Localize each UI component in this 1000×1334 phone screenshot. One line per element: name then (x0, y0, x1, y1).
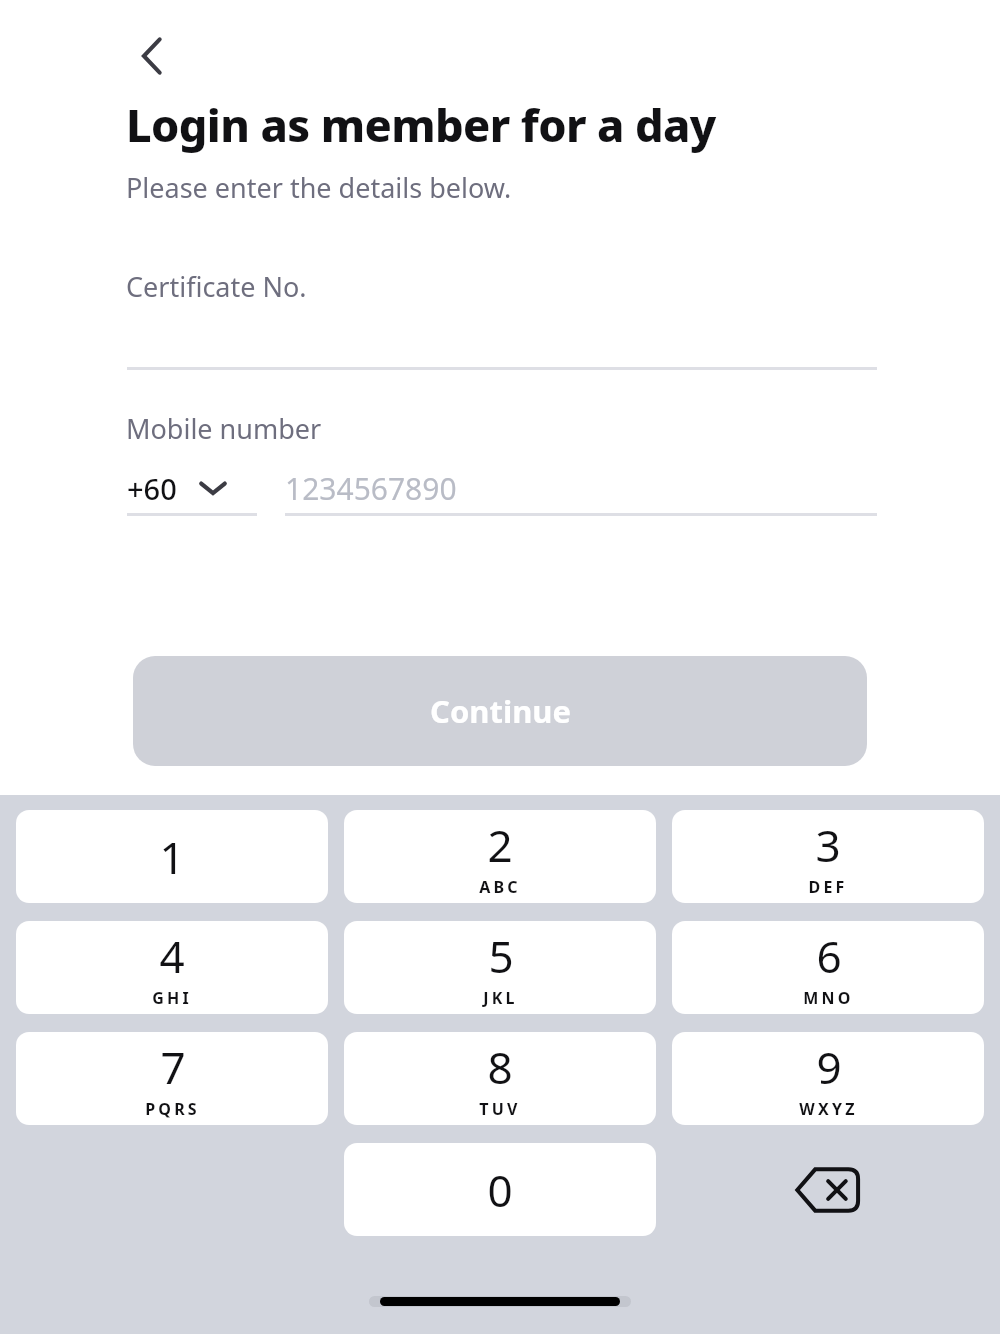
staticText: TUV (479, 1098, 521, 1120)
staticText: MNO (803, 987, 854, 1009)
staticText: WXYZ (799, 1098, 858, 1120)
staticText: +60 (127, 469, 177, 508)
staticText: 6 (816, 926, 842, 986)
button[interactable]: +60 (127, 463, 257, 516)
button[interactable]: Backspace (672, 1143, 984, 1236)
staticText: 3 (815, 815, 841, 875)
button[interactable]: Back (116, 24, 188, 88)
button[interactable]: 0 (344, 1143, 656, 1236)
staticText: 5 (488, 926, 514, 986)
staticText: 7 (160, 1037, 186, 1097)
staticText: ABC (479, 876, 521, 898)
button[interactable]: 1 (16, 810, 328, 903)
button[interactable]: 3 (672, 810, 984, 903)
button[interactable]: 8 (344, 1032, 656, 1125)
staticText: Please enter the details below. (126, 169, 512, 206)
staticText: JKL (483, 987, 518, 1009)
button[interactable]: 5 (344, 921, 656, 1014)
button[interactable]: 6 (672, 921, 984, 1014)
button[interactable]: Mobile number input (285, 463, 877, 516)
staticText: DEF (808, 876, 848, 898)
staticText: 9 (816, 1037, 842, 1097)
button[interactable]: 4 (16, 921, 328, 1014)
staticText: 1 (159, 827, 185, 887)
button[interactable]: 9 (672, 1032, 984, 1125)
staticText: 2 (487, 815, 513, 875)
staticText: GHI (152, 987, 192, 1009)
staticText: 1234567890 (285, 468, 457, 509)
button[interactable]: Continue (133, 656, 867, 766)
button[interactable]: 7 (16, 1032, 328, 1125)
button[interactable]: 2 (344, 810, 656, 903)
staticText: Certificate No. (126, 268, 307, 305)
staticText: Continue (430, 690, 571, 732)
staticText: Login as member for a day (126, 94, 716, 155)
staticText: 8 (487, 1037, 513, 1097)
staticText: 0 (487, 1160, 513, 1220)
staticText: Mobile number (126, 410, 322, 447)
staticText: 4 (159, 926, 185, 986)
staticText: PQRS (145, 1098, 200, 1120)
